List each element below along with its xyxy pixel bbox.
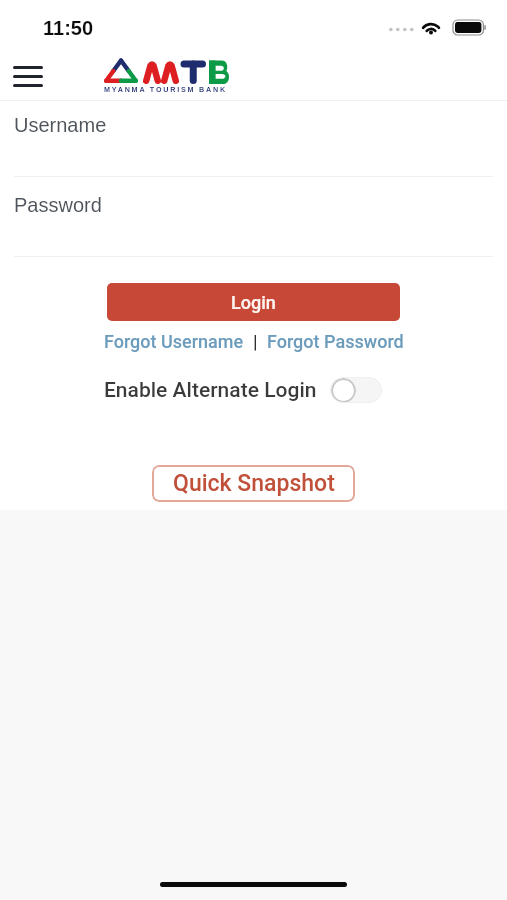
staticText: Password bbox=[14, 194, 102, 216]
staticText: Quick Snapshot bbox=[173, 470, 335, 497]
button[interactable]: Enable Alternate Login bbox=[330, 377, 382, 403]
staticText: Username bbox=[14, 114, 107, 136]
button[interactable]: Menu bbox=[6, 54, 50, 98]
button[interactable]: Login bbox=[107, 283, 400, 321]
staticText: Login bbox=[231, 292, 276, 313]
staticText: Enable Alternate Login bbox=[104, 378, 317, 403]
staticText: MYANMA TOURISM BANK bbox=[104, 85, 227, 93]
staticText: | bbox=[244, 331, 267, 352]
button[interactable]: Forgot Username bbox=[104, 331, 244, 352]
button[interactable]: Quick Snapshot bbox=[152, 465, 355, 502]
staticText: 11:50 bbox=[43, 17, 94, 39]
button[interactable]: Forgot Password bbox=[267, 331, 404, 352]
